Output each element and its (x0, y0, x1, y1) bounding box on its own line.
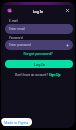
button[interactable]: Log In (5, 60, 73, 68)
staticText: E-mail (9, 19, 18, 23)
button[interactable]: Sign Up (49, 73, 61, 77)
staticText: Password (9, 36, 23, 40)
staticText: Log In (34, 62, 45, 67)
staticText: Enter email (9, 27, 26, 31)
staticText: Enter password (9, 43, 31, 47)
staticText: Forgot password? (23, 51, 53, 56)
staticText: Log In (1, 9, 75, 14)
button[interactable]: Enter email (5, 24, 73, 34)
staticText: Don't have an account? (15, 73, 49, 77)
button[interactable]: Forgot password? (1, 51, 75, 56)
button[interactable]: Close (63, 6, 72, 15)
staticText: Made in Figma (4, 120, 29, 125)
button[interactable]: Show password (65, 43, 70, 48)
button[interactable]: Made in Figma (1, 118, 32, 126)
button[interactable]: Enter password (5, 40, 73, 50)
